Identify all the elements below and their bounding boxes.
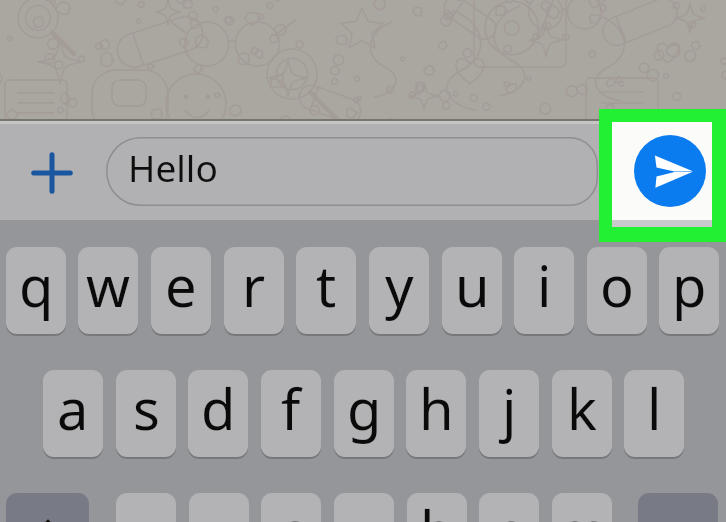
- button[interactable]: w: [78, 247, 138, 334]
- button[interactable]: u: [442, 247, 502, 334]
- button[interactable]: v: [334, 493, 394, 522]
- staticText: q: [19, 247, 54, 323]
- button[interactable]: b: [407, 493, 467, 522]
- staticText: u: [455, 247, 490, 323]
- staticText: n: [492, 493, 527, 522]
- staticText: l: [647, 370, 662, 446]
- button[interactable]: t: [296, 247, 356, 334]
- button[interactable]: k: [552, 370, 612, 457]
- button[interactable]: Attach: [22, 143, 82, 203]
- button[interactable]: f: [261, 370, 321, 457]
- staticText: b: [420, 493, 455, 522]
- staticText: t: [316, 247, 337, 323]
- button[interactable]: r: [224, 247, 284, 334]
- staticText: g: [347, 370, 382, 446]
- staticText: h: [419, 370, 454, 446]
- button[interactable]: z: [116, 493, 176, 522]
- button[interactable]: l: [624, 370, 684, 457]
- staticText: j: [502, 370, 517, 446]
- button[interactable]: g: [334, 370, 394, 457]
- button[interactable]: Send: [612, 122, 712, 227]
- staticText: r: [242, 247, 266, 323]
- button[interactable]: n: [479, 493, 539, 522]
- button[interactable]: a: [43, 370, 103, 457]
- button[interactable]: j: [479, 370, 539, 457]
- staticText: p: [672, 247, 707, 323]
- staticText: i: [537, 247, 552, 323]
- staticText: k: [567, 370, 597, 446]
- staticText: w: [86, 247, 131, 323]
- button[interactable]: d: [188, 370, 248, 457]
- button[interactable]: q: [6, 247, 66, 334]
- button[interactable]: x: [189, 493, 249, 522]
- staticText: e: [165, 247, 197, 323]
- button[interactable]: c: [261, 493, 321, 522]
- staticText: s: [133, 370, 160, 446]
- button[interactable]: o: [587, 247, 647, 334]
- staticText: d: [201, 370, 236, 446]
- staticText: o: [600, 247, 634, 323]
- button[interactable]: p: [659, 247, 719, 334]
- staticText: c: [278, 493, 305, 522]
- button[interactable]: s: [116, 370, 176, 457]
- staticText: a: [57, 370, 89, 446]
- staticText: Hello: [128, 142, 218, 192]
- button[interactable]: Backspace: [638, 493, 718, 522]
- button[interactable]: i: [514, 247, 574, 334]
- button[interactable]: Hello: [106, 137, 598, 206]
- button[interactable]: m: [552, 493, 612, 522]
- staticText: y: [385, 247, 414, 323]
- staticText: m: [556, 493, 609, 522]
- staticText: f: [281, 370, 301, 446]
- button[interactable]: e: [151, 247, 211, 334]
- button[interactable]: Shift: [6, 493, 89, 522]
- button[interactable]: y: [369, 247, 429, 334]
- button[interactable]: h: [406, 370, 466, 457]
